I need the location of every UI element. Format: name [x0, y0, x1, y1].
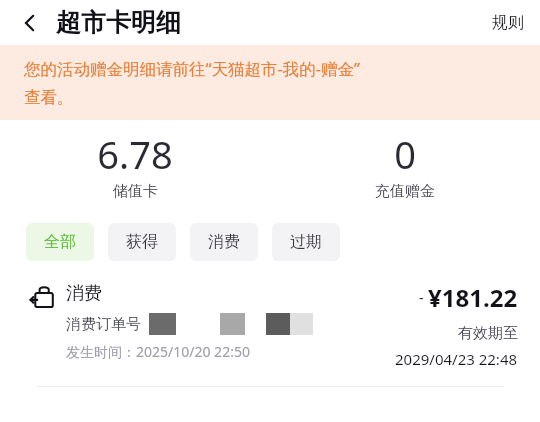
- button[interactable]: Back: [12, 5, 48, 41]
- button[interactable]: 消费: [0, 281, 540, 376]
- button[interactable]: 消费: [190, 223, 258, 261]
- button[interactable]: 规则: [476, 7, 540, 39]
- staticText: 全部: [44, 232, 76, 252]
- button[interactable]: 过期: [272, 223, 340, 261]
- staticText: 有效期至: [458, 324, 518, 343]
- staticText: ¥181.22: [428, 281, 518, 314]
- other: 消费: [30, 285, 54, 309]
- staticText: 储值卡: [113, 182, 158, 201]
- staticText: 消费: [208, 232, 240, 252]
- staticText: 获得: [126, 232, 158, 252]
- staticText: 6.78: [97, 128, 173, 180]
- button[interactable]: 获得: [108, 223, 176, 261]
- button[interactable]: 全部: [26, 223, 94, 261]
- staticText: 规则: [492, 13, 524, 33]
- staticText: 超市卡明细: [56, 7, 181, 38]
- staticText: 消费: [66, 282, 102, 305]
- staticText: 消费订单号: [66, 315, 141, 334]
- staticText: 发生时间：2025/10/20 22:50: [66, 342, 250, 361]
- staticText: 2029/04/23 22:48: [395, 349, 518, 369]
- staticText: -: [419, 288, 424, 307]
- staticText: 您的活动赠金明细请前往“天猫超市-我的-赠金” 查看。: [24, 57, 360, 108]
- staticText: 0: [394, 128, 416, 180]
- staticText: 充值赠金: [375, 182, 435, 201]
- staticText: 过期: [290, 232, 322, 252]
